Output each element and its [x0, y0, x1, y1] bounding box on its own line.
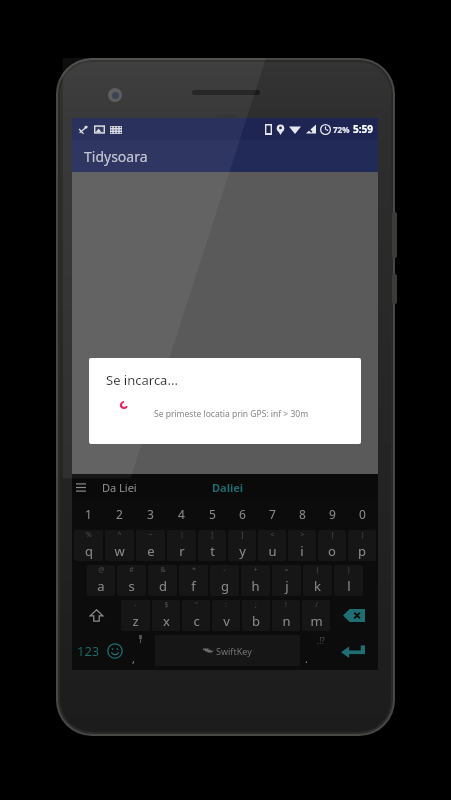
button[interactable]: 0: [347, 500, 377, 528]
button[interactable]: Enter: [329, 635, 376, 666]
button[interactable]: *: [179, 565, 208, 596]
button[interactable]: 5: [197, 500, 227, 528]
staticText: w: [114, 542, 125, 560]
staticText: h: [251, 577, 260, 595]
button[interactable]: 2: [104, 500, 135, 528]
staticText: 0: [359, 506, 366, 522]
staticText: ~: [148, 530, 153, 540]
button[interactable]: Daliei: [208, 478, 248, 497]
staticText: g: [221, 577, 229, 595]
staticText: m: [310, 612, 323, 630]
staticText: ): [347, 565, 350, 575]
staticText: b: [252, 612, 260, 630]
button[interactable]: !: [272, 600, 300, 631]
button[interactable]: >: [288, 530, 316, 561]
button[interactable]: @: [87, 565, 115, 596]
button[interactable]: -: [210, 565, 239, 596]
button[interactable]: =: [272, 565, 301, 596]
staticText: |: [180, 530, 184, 540]
staticText: Se incarca...: [106, 371, 178, 389]
staticText: z: [132, 612, 139, 630]
staticText: Daliei: [212, 480, 244, 495]
staticText: !: [285, 600, 287, 610]
button[interactable]: 4: [166, 500, 197, 528]
staticText: r: [179, 542, 185, 560]
staticText: [: [211, 530, 214, 540]
staticText: <: [270, 530, 275, 540]
staticText: /: [315, 600, 318, 610]
staticText: 4: [178, 506, 185, 522]
button[interactable]: 3: [135, 500, 166, 528]
button[interactable]: 6: [227, 500, 257, 528]
button[interactable]: :: [212, 600, 240, 631]
button[interactable]: ): [348, 530, 376, 561]
staticText: SwiftKey: [216, 645, 252, 657]
button[interactable]: -: [121, 600, 150, 631]
button[interactable]: 8: [287, 500, 317, 528]
button[interactable]: 123: [73, 634, 103, 667]
staticText: o: [328, 542, 336, 560]
staticText: 6: [239, 506, 246, 522]
button[interactable]: Shift: [74, 600, 119, 631]
button[interactable]: |: [167, 530, 196, 561]
staticText: v: [223, 612, 230, 630]
staticText: ): [361, 530, 364, 540]
staticText: y: [239, 542, 246, 560]
button[interactable]: Space: [155, 635, 300, 666]
staticText: c: [193, 612, 200, 630]
staticText: Da Liei: [102, 480, 137, 495]
button[interactable]: ,: [128, 635, 153, 666]
staticText: n: [282, 612, 291, 630]
staticText: 1: [85, 506, 92, 522]
staticText: q: [85, 542, 93, 560]
staticText: (: [331, 530, 334, 540]
button[interactable]: /: [302, 600, 330, 631]
staticText: =: [284, 565, 289, 575]
button[interactable]: ;: [242, 600, 270, 631]
staticText: 8: [299, 506, 306, 522]
staticText: 3: [147, 506, 154, 522]
staticText: 5:59: [353, 122, 373, 136]
button[interactable]: 1: [73, 500, 104, 528]
staticText: #: [129, 565, 134, 575]
staticText: &: [160, 565, 166, 575]
staticText: :: [225, 600, 227, 610]
button[interactable]: <: [258, 530, 286, 561]
staticText: f: [191, 577, 196, 595]
button[interactable]: #: [117, 565, 146, 596]
button[interactable]: +: [241, 565, 270, 596]
button[interactable]: [: [198, 530, 226, 561]
staticText: ]: [241, 530, 244, 540]
staticText: -: [134, 600, 137, 610]
button[interactable]: .!?: [302, 635, 327, 666]
button[interactable]: %: [74, 530, 103, 561]
staticText: k: [314, 577, 321, 595]
button[interactable]: (: [303, 565, 332, 596]
staticText: $: [164, 600, 169, 610]
staticText: j: [285, 577, 289, 595]
staticText: Tidysoara: [84, 147, 148, 166]
button[interactable]: Da Liei: [98, 478, 141, 497]
staticText: .!?: [317, 635, 325, 646]
button[interactable]: Backspace: [332, 600, 376, 631]
button[interactable]: ^: [105, 530, 134, 561]
button[interactable]: ): [334, 565, 363, 596]
staticText: ,: [132, 651, 135, 666]
button[interactable]: 7: [257, 500, 287, 528]
button[interactable]: ~: [136, 530, 165, 561]
staticText: d: [159, 577, 167, 595]
staticText: *: [192, 565, 196, 575]
button[interactable]: 9: [317, 500, 347, 528]
button[interactable]: ]: [228, 530, 256, 561]
staticText: l: [347, 577, 351, 595]
button[interactable]: (: [318, 530, 346, 561]
button[interactable]: $: [152, 600, 180, 631]
button[interactable]: &: [148, 565, 177, 596]
button[interactable]: ": [182, 600, 210, 631]
staticText: +: [253, 565, 258, 575]
staticText: e: [147, 542, 155, 560]
staticText: %: [86, 530, 92, 540]
button[interactable]: Menu: [76, 483, 86, 492]
staticText: 72%: [333, 124, 350, 135]
button[interactable]: Emoji: [103, 634, 127, 667]
